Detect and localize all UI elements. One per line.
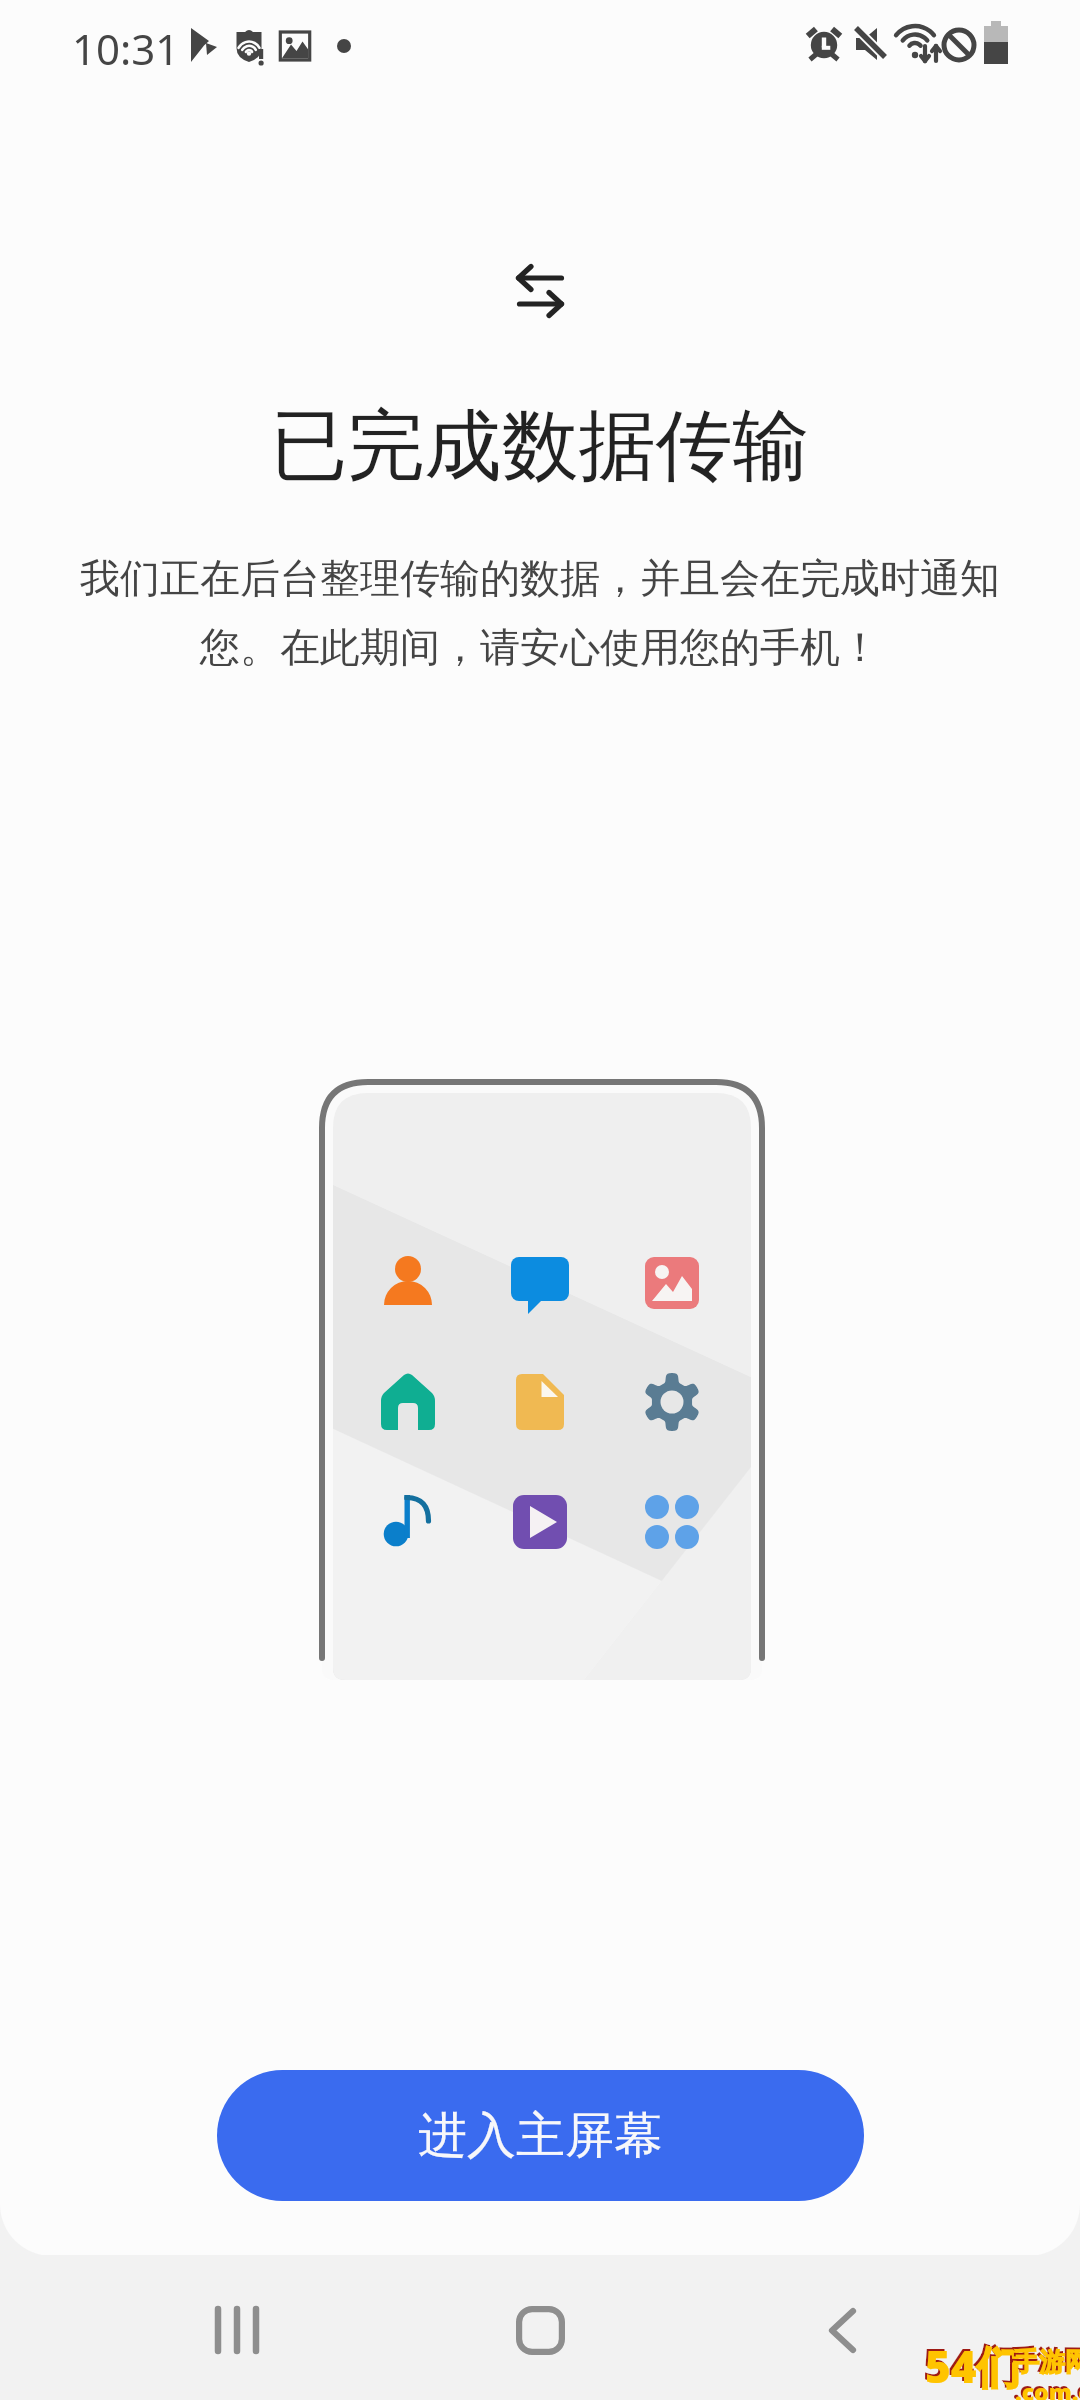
button[interactable]: Recents (167, 2280, 307, 2380)
staticText: .com.cn (1013, 2374, 1080, 2400)
staticText: 54们 (925, 2336, 1021, 2396)
staticText: 手游网 (1011, 2344, 1080, 2377)
button[interactable]: Home (470, 2280, 610, 2380)
button[interactable]: 进入主屏幕 (217, 2070, 864, 2201)
staticText: 54们 (923, 2334, 1019, 2394)
staticText: 已完成数据传输 (0, 398, 1080, 495)
staticText: .com.cn (1015, 2376, 1080, 2400)
staticText: 进入主屏幕 (418, 2105, 663, 2167)
button[interactable]: Back (772, 2280, 912, 2380)
staticText: 我们正在后台整理传输的数据，并且会在完成时通知 您。在此期间，请安心使用您的手机… (30, 553, 1050, 673)
staticText: 10:31 (72, 20, 180, 77)
staticText: 手游网 (1013, 2346, 1080, 2379)
